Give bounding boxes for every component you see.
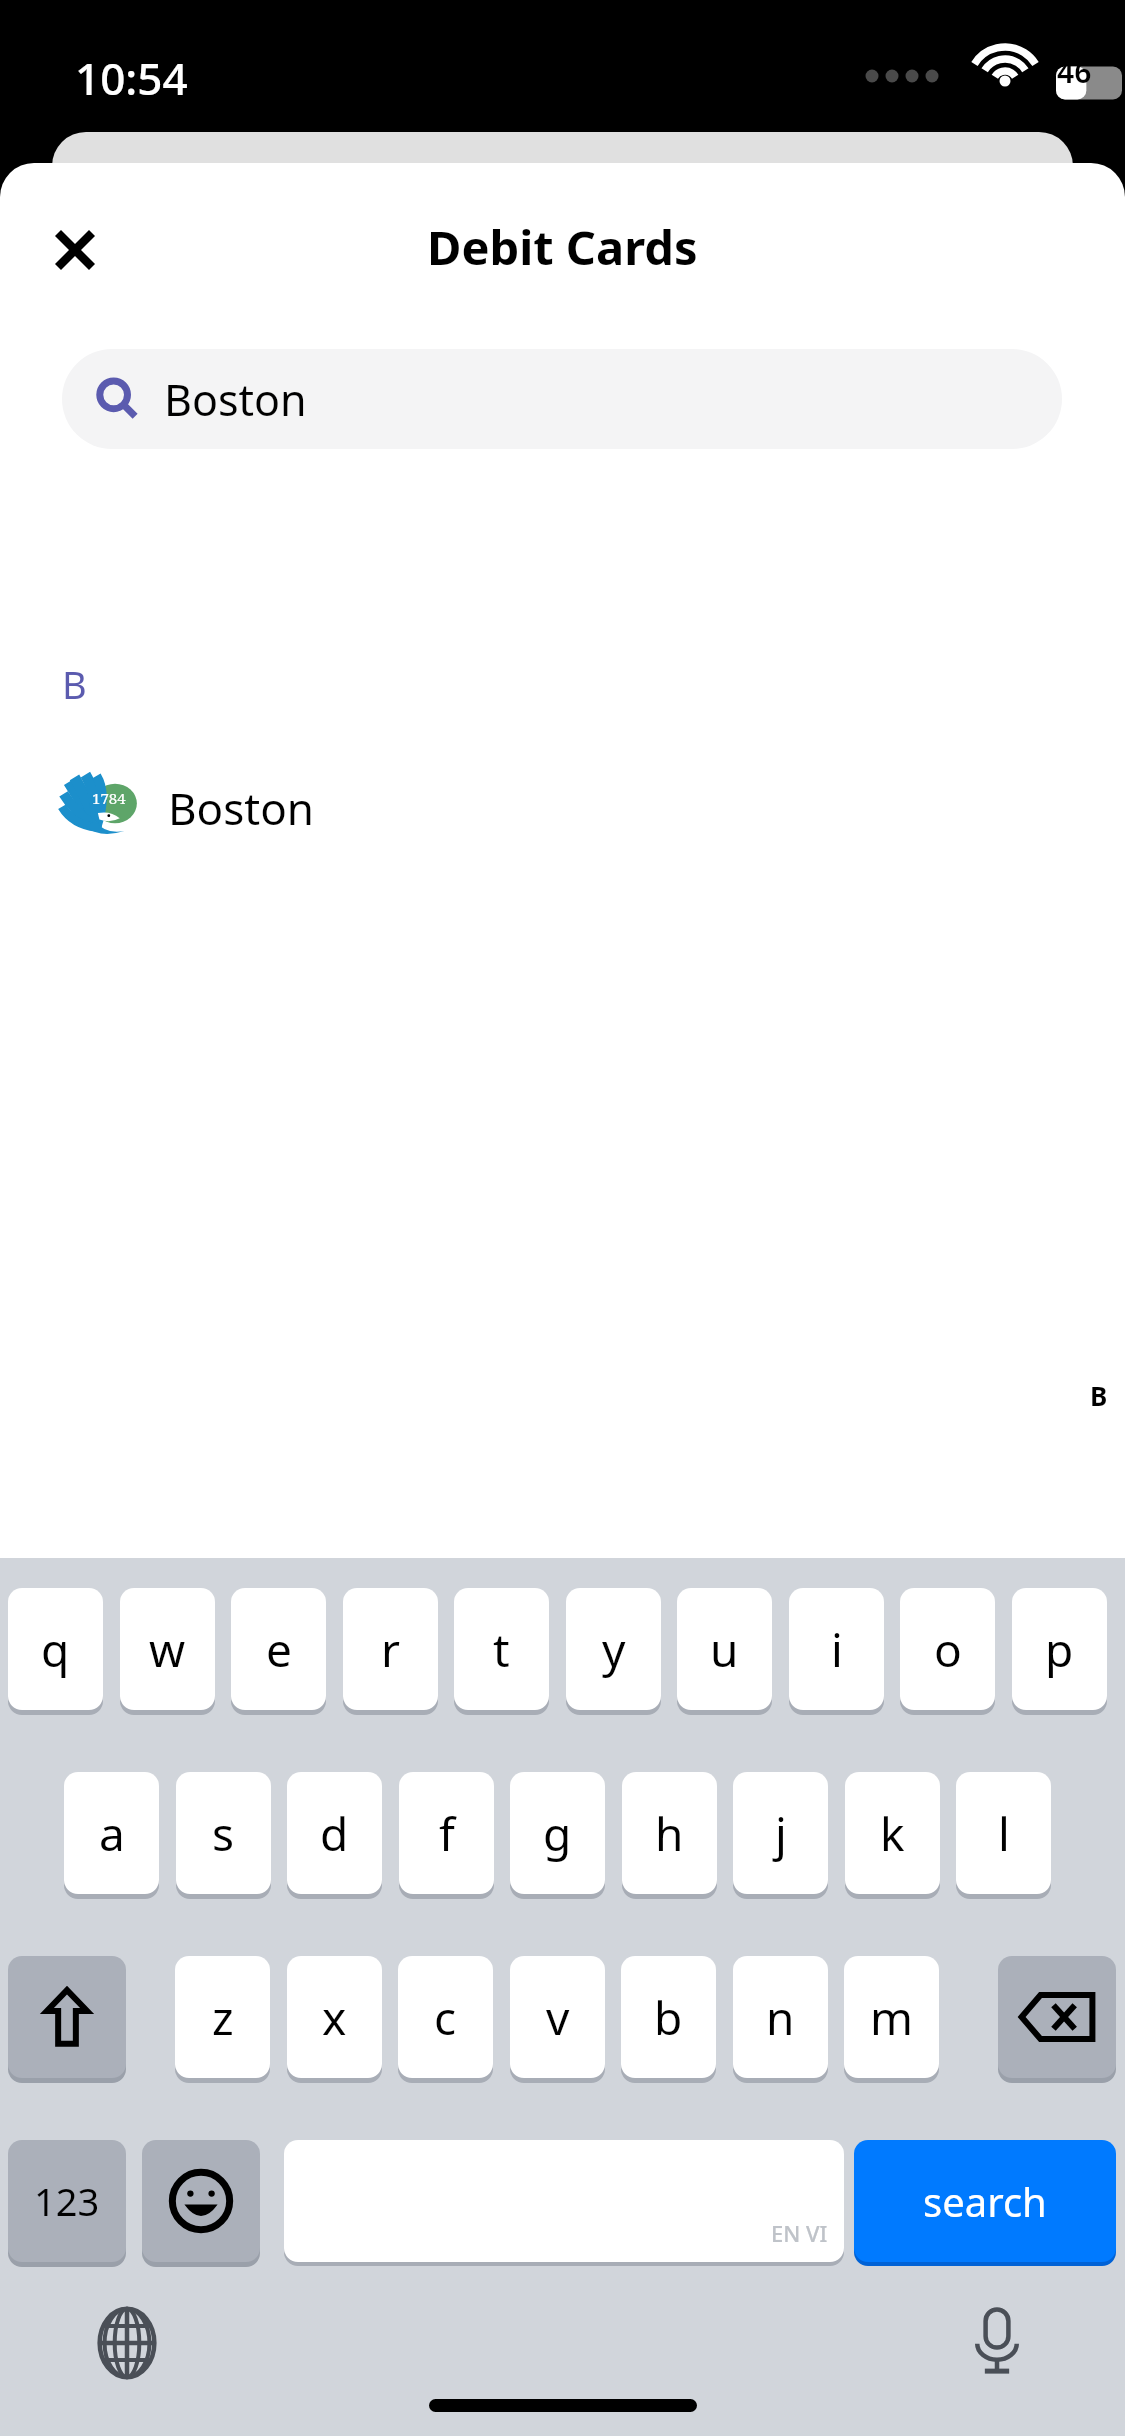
button[interactable]: p [1012, 1588, 1107, 1710]
button[interactable]: x [287, 1956, 382, 2078]
button[interactable]: n [733, 1956, 828, 2078]
staticText: r [381, 1618, 400, 1681]
button[interactable]: z [175, 1956, 270, 2078]
staticText: k [880, 1802, 905, 1865]
staticText: B [62, 658, 87, 710]
staticText: p [1045, 1618, 1074, 1681]
staticText: n [766, 1986, 795, 2049]
button[interactable]: h [622, 1772, 717, 1894]
button[interactable]: k [845, 1772, 940, 1894]
staticText: l [998, 1802, 1010, 1865]
button[interactable]: w [120, 1588, 215, 1710]
button[interactable]: Backspace [998, 1956, 1116, 2078]
staticText: z [212, 1986, 234, 2049]
button[interactable]: Change keyboard language [82, 2298, 172, 2388]
staticText: 46 [1057, 51, 1092, 92]
button[interactable]: q [8, 1588, 103, 1710]
button[interactable]: j [733, 1772, 828, 1894]
button[interactable]: Close [30, 205, 120, 295]
staticText: w [149, 1618, 186, 1681]
staticText: 123 [34, 2175, 100, 2227]
button[interactable]: 123 [8, 2140, 126, 2262]
staticText: Boston [168, 778, 314, 838]
button[interactable]: s [176, 1772, 271, 1894]
button[interactable]: Shift [8, 1956, 126, 2078]
staticText: s [212, 1802, 235, 1865]
staticText: 1784 [92, 788, 126, 808]
staticText: i [831, 1618, 843, 1681]
button[interactable]: Emoji [142, 2140, 260, 2262]
staticText: j [775, 1802, 787, 1865]
button[interactable]: i [789, 1588, 884, 1710]
staticText: u [710, 1618, 739, 1681]
staticText: Boston [164, 370, 307, 429]
staticText: x [322, 1986, 347, 2049]
button[interactable]: a [64, 1772, 159, 1894]
button[interactable]: u [677, 1588, 772, 1710]
button[interactable]: 1784 [0, 753, 1125, 863]
button[interactable]: search [854, 2140, 1116, 2262]
button[interactable]: o [900, 1588, 995, 1710]
button[interactable]: v [510, 1956, 605, 2078]
staticText: 10:54 [75, 48, 188, 108]
button[interactable]: m [844, 1956, 939, 2078]
button[interactable]: Voice input [952, 2298, 1042, 2388]
button[interactable]: l [956, 1772, 1051, 1894]
staticText: g [543, 1802, 572, 1865]
staticText: f [439, 1802, 455, 1865]
staticText: e [266, 1618, 292, 1681]
staticText: c [434, 1986, 457, 2049]
button[interactable]: y [566, 1588, 661, 1710]
staticText: t [493, 1618, 510, 1681]
staticText: b [654, 1986, 683, 2049]
staticText: Debit Cards [427, 215, 698, 279]
staticText: q [41, 1618, 70, 1681]
button[interactable]: g [510, 1772, 605, 1894]
button[interactable]: r [343, 1588, 438, 1710]
button[interactable]: b [621, 1956, 716, 2078]
button[interactable]: e [231, 1588, 326, 1710]
button[interactable]: f [399, 1772, 494, 1894]
button[interactable]: c [398, 1956, 493, 2078]
staticText: d [320, 1802, 349, 1865]
staticText: B [1090, 1378, 1108, 1413]
staticText: v [546, 1986, 570, 2049]
staticText: search [923, 2174, 1047, 2228]
staticText: a [99, 1802, 125, 1865]
button[interactable]: Space [284, 2140, 844, 2262]
button[interactable]: t [454, 1588, 549, 1710]
staticText: m [870, 1986, 914, 2049]
staticText: o [934, 1618, 962, 1681]
staticText: EN VI [771, 2218, 828, 2248]
staticText: h [655, 1802, 684, 1865]
button[interactable]: d [287, 1772, 382, 1894]
staticText: y [602, 1618, 626, 1681]
button[interactable]: Boston [62, 349, 1062, 449]
